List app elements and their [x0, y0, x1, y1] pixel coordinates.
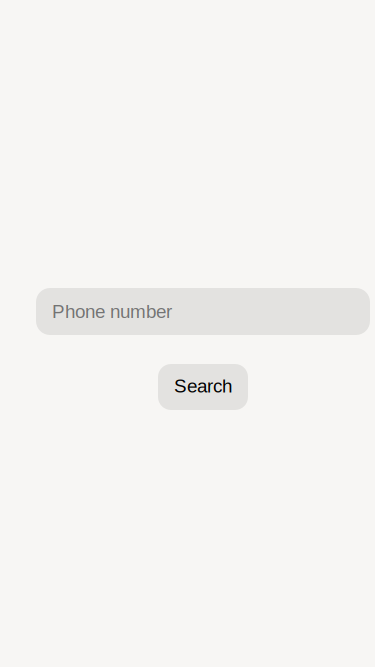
- button[interactable]: Phone number: [36, 288, 370, 335]
- button[interactable]: Search: [158, 364, 248, 410]
- staticText: Phone number: [52, 301, 172, 322]
- staticText: Search: [174, 375, 232, 396]
